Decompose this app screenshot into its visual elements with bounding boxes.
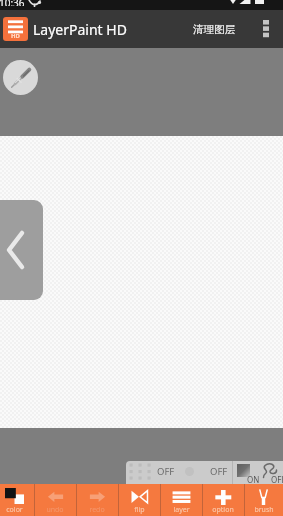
button[interactable]: OFF — [178, 461, 232, 484]
staticText: LayerPaint HD — [33, 20, 127, 39]
staticText: OFF — [157, 465, 175, 478]
button[interactable]: layer — [160, 484, 202, 516]
staticText: redo — [89, 505, 105, 515]
staticText: 10:36 — [0, 0, 25, 6]
button[interactable]: flip — [118, 484, 160, 516]
staticText: flip — [134, 505, 145, 515]
staticText: undo — [46, 505, 64, 515]
button[interactable]: OFF — [259, 461, 283, 484]
staticText: option — [212, 505, 234, 515]
staticText: layer — [173, 505, 190, 515]
button[interactable]: Color picker — [3, 60, 38, 95]
button[interactable]: undo — [34, 484, 76, 516]
button[interactable]: More options — [254, 10, 277, 48]
staticText: ON — [247, 474, 260, 484]
button[interactable]: 清理图层 — [185, 10, 243, 48]
staticText: 清理图层 — [193, 23, 235, 36]
staticText: brush — [254, 505, 274, 515]
button[interactable]: option — [202, 484, 244, 516]
button[interactable]: ON — [233, 461, 259, 484]
button[interactable]: brush — [244, 484, 283, 516]
button[interactable]: color — [0, 484, 34, 516]
button[interactable]: Open layers panel — [0, 200, 43, 300]
button[interactable]: redo — [76, 484, 118, 516]
staticText: HD — [11, 32, 20, 40]
staticText: OFF — [271, 474, 283, 484]
staticText: OFF — [210, 465, 228, 478]
button[interactable]: OFF — [126, 461, 178, 484]
staticText: color — [6, 505, 23, 515]
